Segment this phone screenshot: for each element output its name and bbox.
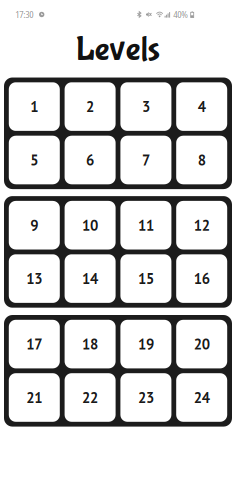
staticText: 17:30	[15, 8, 33, 21]
button[interactable]: 20	[176, 320, 227, 368]
staticText: 20	[194, 335, 210, 354]
button[interactable]: 8	[176, 136, 227, 184]
button[interactable]: 9	[9, 201, 60, 249]
staticText: 15	[138, 269, 154, 288]
button[interactable]: 4	[176, 82, 227, 131]
staticText: 1	[30, 97, 38, 116]
staticText: 12	[194, 216, 210, 235]
staticText: 9	[30, 216, 38, 235]
button[interactable]: 6	[65, 136, 116, 184]
staticText: 14	[82, 269, 98, 288]
button[interactable]: 16	[176, 254, 227, 303]
staticText: 18	[82, 335, 98, 354]
button[interactable]: 22	[65, 373, 116, 422]
staticText: 8	[198, 150, 206, 169]
button[interactable]: 10	[65, 201, 116, 249]
staticText: Levels	[75, 29, 160, 70]
staticText: 3	[142, 97, 150, 116]
button[interactable]: 13	[9, 254, 60, 303]
button[interactable]: 24	[176, 373, 227, 422]
staticText: 22	[82, 388, 98, 407]
staticText: 11	[138, 216, 154, 235]
staticText: 10	[82, 216, 98, 235]
staticText: 5	[30, 150, 38, 169]
button[interactable]: 15	[120, 254, 171, 303]
button[interactable]: 3	[120, 82, 171, 131]
button[interactable]: 1	[9, 82, 60, 131]
staticText: 23	[138, 388, 154, 407]
staticText: 21	[26, 388, 42, 407]
staticText: 6	[86, 150, 94, 169]
button[interactable]: 14	[65, 254, 116, 303]
staticText: 13	[26, 269, 42, 288]
button[interactable]: 2	[65, 82, 116, 131]
button[interactable]: 19	[120, 320, 171, 368]
staticText: 17	[26, 335, 42, 354]
button[interactable]: 12	[176, 201, 227, 249]
staticText: 4	[198, 97, 206, 116]
staticText: 40%	[173, 8, 188, 21]
button[interactable]: 7	[120, 136, 171, 184]
button[interactable]: 11	[120, 201, 171, 249]
button[interactable]: 18	[65, 320, 116, 368]
staticText: 16	[194, 269, 210, 288]
staticText: 24	[194, 388, 210, 407]
staticText: 7	[142, 150, 150, 169]
staticText: 2	[86, 97, 94, 116]
button[interactable]: 17	[9, 320, 60, 368]
button[interactable]: 21	[9, 373, 60, 422]
staticText: 19	[138, 335, 154, 354]
button[interactable]: 23	[120, 373, 171, 422]
button[interactable]: 5	[9, 136, 60, 184]
